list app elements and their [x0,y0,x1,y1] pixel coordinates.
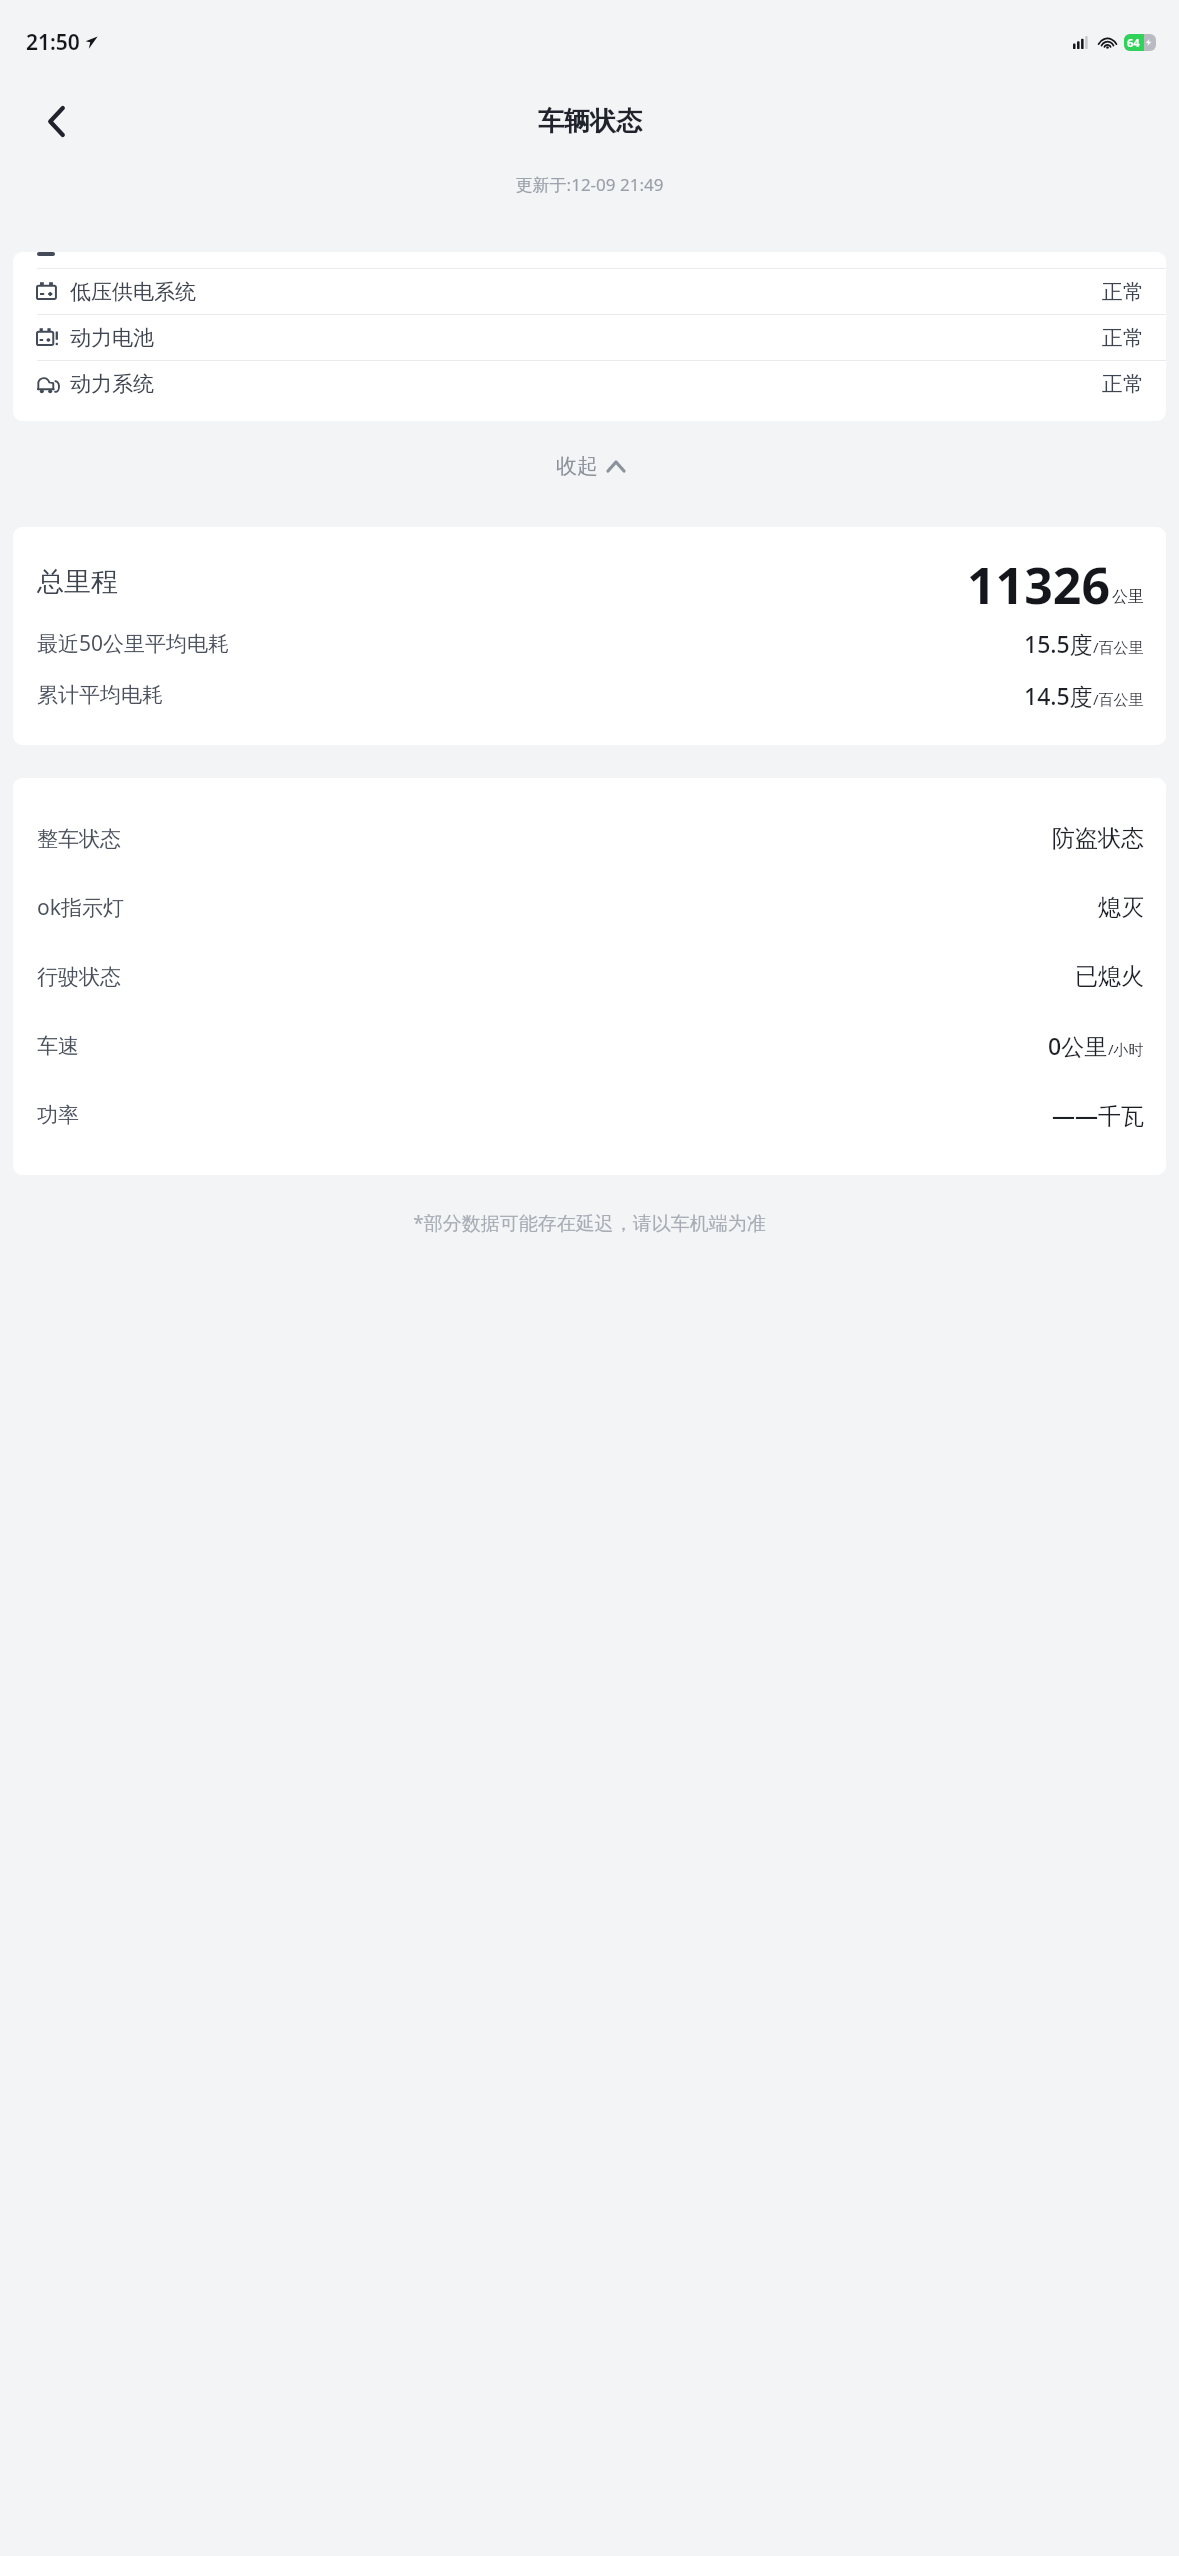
staticText: 整车状态 [37,826,121,852]
staticText: 功率 [37,1102,79,1128]
button[interactable]: 最近50公里平均电耗 [13,623,1166,663]
staticText: 车速 [37,1033,79,1059]
staticText: 动力系统 [70,371,154,397]
button[interactable]: 动力系统 [13,361,1166,406]
staticText: *部分数据可能存在延迟，请以车机端为准 [0,1210,1179,1236]
staticText: 累计平均电耗 [37,682,163,708]
staticText: 收起 [556,453,598,479]
staticText: 正常 [1102,371,1144,397]
staticText: 防盗状态 [1052,824,1144,853]
staticText: 正常 [1102,279,1144,305]
staticText: 15.5度 [1024,628,1093,659]
staticText: ——千瓦 [1052,1099,1144,1130]
staticText: 最近50公里平均电耗 [37,629,230,658]
staticText: 21:50 [26,28,80,57]
staticText: 熄灭 [1098,893,1144,922]
staticText: 总里程 [37,565,118,599]
staticText: 64 [1127,35,1140,50]
button[interactable]: 车速 [13,1011,1166,1080]
button[interactable]: ok指示灯 [13,873,1166,942]
button[interactable]: 总里程 [13,551,1166,613]
staticText: 正常 [1102,325,1144,351]
staticText: 车辆状态 [538,105,642,138]
button[interactable]: Back [34,99,78,143]
staticText: 已熄火 [1075,962,1144,991]
button[interactable]: 低压供电系统 [13,269,1166,314]
staticText: 低压供电系统 [70,279,196,305]
staticText: /百公里 [1093,637,1144,657]
staticText: /小时 [1108,1039,1144,1059]
staticText: 0公里 [1048,1030,1108,1061]
staticText: 公里 [1112,587,1144,607]
button[interactable]: 收起 [540,447,640,485]
staticText: 行驶状态 [37,964,121,990]
staticText: /百公里 [1093,689,1144,709]
button[interactable]: 行驶状态 [13,942,1166,1011]
button[interactable]: 功率 [13,1080,1166,1149]
button[interactable]: 动力电池 [13,315,1166,360]
button[interactable]: 累计平均电耗 [13,675,1166,715]
button[interactable]: 整车状态 [13,804,1166,873]
staticText: 14.5度 [1024,680,1093,711]
staticText: ok指示灯 [37,893,124,922]
staticText: 更新于:12-09 21:49 [0,173,1179,196]
staticText: 11326 [967,551,1110,613]
staticText: 动力电池 [70,325,154,351]
